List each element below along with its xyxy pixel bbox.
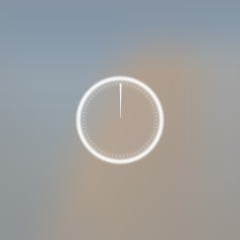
button[interactable]: Timer dial: [0, 0, 240, 240]
